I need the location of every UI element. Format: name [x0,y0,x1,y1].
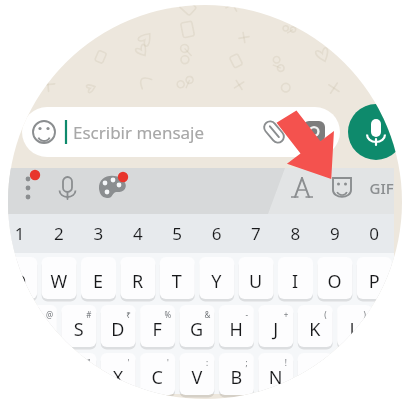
button[interactable]: Text style [286,170,320,212]
button[interactable]: Camera [300,115,330,145]
button[interactable]: Emoji [30,117,60,147]
button[interactable] [22,107,340,157]
button[interactable]: Voice message [348,104,402,160]
button[interactable]: Themes [94,170,132,212]
button[interactable]: Attach [262,115,296,149]
button[interactable]: Voice input [52,170,86,212]
button[interactable]: Stickers [326,170,360,212]
button[interactable]: More options [14,170,48,212]
button[interactable]: GIF [366,170,402,212]
